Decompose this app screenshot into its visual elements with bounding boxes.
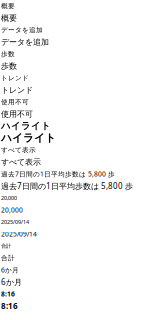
staticText: 2025/09/14 (1, 218, 29, 226)
staticText: 20,000 (1, 194, 17, 202)
staticText: 使用不可 (1, 98, 29, 106)
staticText: すべて表示 (1, 146, 36, 154)
staticText: 概要 (1, 2, 15, 10)
staticText: 6か月 (1, 277, 22, 287)
staticText: データを追加 (1, 37, 49, 47)
staticText: 20,000 (1, 206, 23, 214)
staticText: 合計 (1, 254, 15, 262)
staticText: 8:16 (1, 290, 15, 298)
staticText: 使用不可 (1, 109, 33, 119)
staticText: 8:16 (1, 301, 18, 311)
staticText: すべて表示 (1, 157, 41, 167)
staticText: 概要 (1, 13, 17, 23)
staticText: ハイライト (1, 131, 56, 144)
staticText: 歩数 (1, 50, 15, 58)
staticText: 歩数 (1, 61, 17, 71)
staticText: データを追加 (1, 26, 43, 34)
staticText: トレンド (1, 74, 29, 82)
staticText: ハイライト (1, 120, 51, 132)
staticText: 過去7日間の1日平均歩数は 5,800 歩 (1, 170, 115, 178)
staticText: 過去7日間の1日平均歩数は 5,800 歩 (1, 181, 133, 191)
staticText: トレンド (1, 85, 33, 95)
staticText: 6か月 (1, 266, 19, 274)
staticText: 合計 (1, 243, 11, 249)
staticText: 2025/09/14 (1, 230, 37, 238)
